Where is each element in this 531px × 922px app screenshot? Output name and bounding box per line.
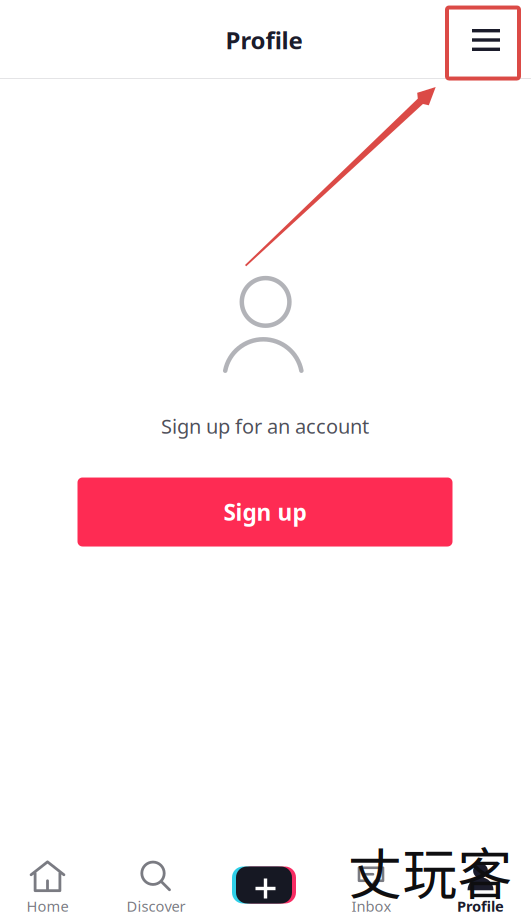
staticText: Discover [126, 896, 185, 916]
staticText: Profile [457, 896, 504, 916]
button[interactable]: Create [232, 856, 296, 914]
button[interactable]: Profile [427, 858, 531, 918]
staticText: Home [26, 896, 68, 916]
button[interactable]: Inbox [318, 858, 424, 918]
button[interactable]: Menu [455, 9, 517, 71]
staticText: Sign up for an account [161, 413, 369, 439]
staticText: 丈玩客 [347, 830, 512, 910]
button[interactable]: Discover [103, 858, 209, 918]
staticText: Sign up [223, 497, 306, 527]
button[interactable]: Home [0, 858, 100, 918]
staticText: Inbox [351, 896, 391, 916]
button[interactable]: Sign up [77, 477, 452, 546]
staticText: Profile [225, 24, 302, 56]
